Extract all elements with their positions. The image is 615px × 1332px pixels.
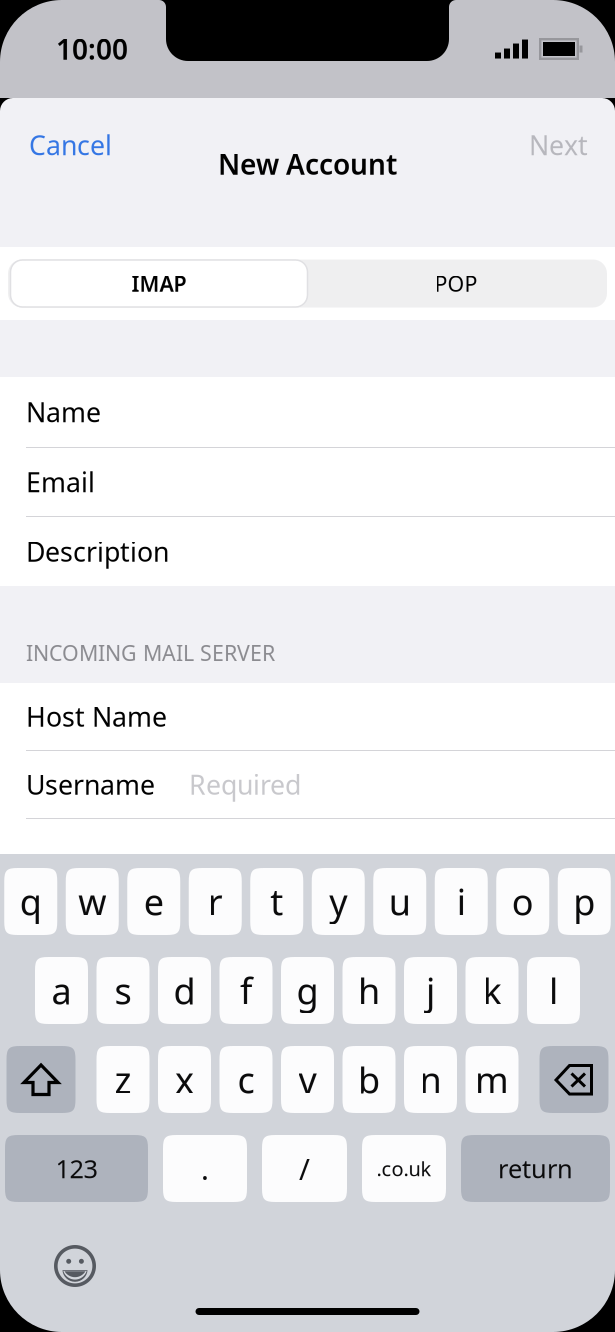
- button[interactable]: r: [189, 868, 242, 935]
- staticText: d: [173, 967, 195, 1014]
- button[interactable]: Description: [0, 517, 615, 586]
- staticText: Host Name: [26, 699, 167, 734]
- button[interactable]: Username: [0, 751, 615, 818]
- button[interactable]: y: [312, 868, 365, 935]
- button[interactable]: return: [461, 1135, 610, 1202]
- button[interactable]: i: [435, 868, 488, 935]
- staticText: Name: [26, 394, 101, 430]
- staticText: b: [358, 1056, 380, 1103]
- button[interactable]: c: [219, 1046, 272, 1113]
- staticText: l: [549, 967, 558, 1014]
- button[interactable]: k: [465, 957, 518, 1024]
- staticText: k: [482, 967, 501, 1014]
- button[interactable]: b: [342, 1046, 395, 1113]
- button[interactable]: Email: [0, 448, 615, 516]
- staticText: 10:00: [56, 30, 128, 68]
- staticText: /: [299, 1149, 310, 1188]
- button[interactable]: v: [281, 1046, 334, 1113]
- staticText: POP: [434, 269, 477, 298]
- staticText: IMAP: [131, 269, 186, 298]
- staticText: j: [426, 967, 435, 1014]
- staticText: INCOMING MAIL SERVER: [26, 639, 275, 667]
- staticText: h: [358, 967, 380, 1014]
- staticText: c: [237, 1056, 254, 1103]
- staticText: 123: [55, 1152, 97, 1185]
- staticText: g: [296, 967, 318, 1014]
- button[interactable]: l: [527, 957, 580, 1024]
- staticText: Required: [189, 767, 301, 802]
- staticText: Description: [26, 534, 169, 569]
- button[interactable]: Shift: [6, 1046, 75, 1113]
- button[interactable]: /: [262, 1135, 347, 1202]
- button[interactable]: Next: [513, 128, 615, 162]
- staticText: return: [498, 1152, 573, 1185]
- button[interactable]: o: [496, 868, 549, 935]
- button[interactable]: .: [163, 1135, 247, 1202]
- staticText: Cancel: [29, 127, 112, 163]
- button[interactable]: f: [219, 957, 272, 1024]
- button[interactable]: d: [158, 957, 211, 1024]
- staticText: a: [51, 967, 71, 1014]
- button[interactable]: Delete: [539, 1046, 608, 1113]
- button[interactable]: p: [558, 868, 611, 935]
- button[interactable]: .co.uk: [362, 1135, 446, 1202]
- staticText: Email: [26, 464, 95, 500]
- button[interactable]: e: [127, 868, 180, 935]
- staticText: .: [201, 1149, 209, 1188]
- staticText: i: [457, 878, 466, 925]
- staticText: n: [419, 1056, 441, 1103]
- button[interactable]: j: [404, 957, 457, 1024]
- button[interactable]: Emoji: [54, 1245, 96, 1287]
- staticText: e: [144, 878, 164, 925]
- button[interactable]: n: [404, 1046, 457, 1113]
- button[interactable]: s: [96, 957, 149, 1024]
- staticText: t: [270, 878, 283, 925]
- button[interactable]: x: [158, 1046, 211, 1113]
- staticText: .co.uk: [376, 1155, 431, 1182]
- button[interactable]: g: [281, 957, 334, 1024]
- staticText: z: [114, 1056, 131, 1103]
- staticText: o: [512, 878, 534, 925]
- button[interactable]: 123: [5, 1135, 148, 1202]
- staticText: m: [475, 1056, 509, 1103]
- button[interactable]: m: [465, 1046, 518, 1113]
- staticText: Username: [26, 767, 155, 802]
- button[interactable]: t: [250, 868, 303, 935]
- button[interactable]: Host Name: [0, 683, 615, 750]
- button[interactable]: z: [96, 1046, 149, 1113]
- staticText: New Account: [218, 145, 397, 183]
- staticText: p: [573, 878, 595, 925]
- button[interactable]: u: [373, 868, 426, 935]
- button[interactable]: Name: [0, 377, 615, 447]
- staticText: u: [389, 878, 411, 925]
- button[interactable]: POP: [307, 260, 604, 307]
- button[interactable]: Cancel: [0, 128, 128, 162]
- button[interactable]: a: [35, 957, 88, 1024]
- staticText: y: [329, 878, 347, 925]
- staticText: x: [175, 1056, 194, 1103]
- button[interactable]: h: [342, 957, 395, 1024]
- button[interactable]: w: [66, 868, 119, 935]
- button[interactable]: IMAP: [10, 260, 307, 307]
- staticText: w: [78, 878, 106, 925]
- staticText: r: [208, 878, 223, 925]
- staticText: Next: [529, 127, 588, 163]
- button[interactable]: q: [4, 868, 57, 935]
- staticText: f: [240, 967, 252, 1014]
- staticText: s: [114, 967, 131, 1014]
- staticText: q: [20, 878, 42, 925]
- staticText: v: [298, 1056, 316, 1103]
